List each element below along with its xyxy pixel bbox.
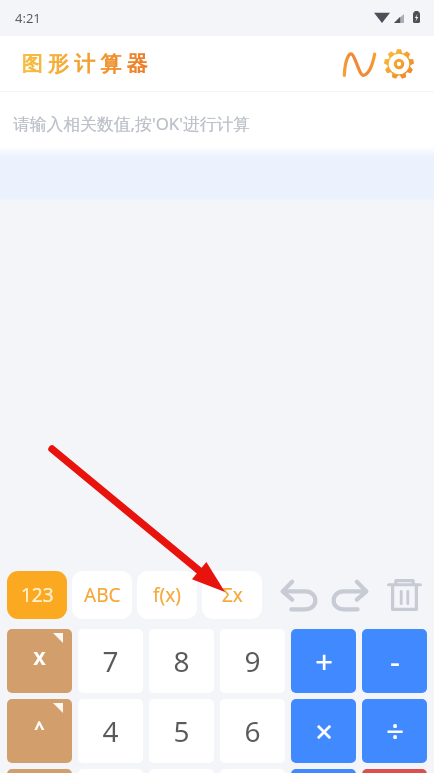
staticText: 5 <box>173 712 190 750</box>
button[interactable]: C <box>362 769 427 773</box>
button[interactable]: 8 <box>149 629 214 693</box>
staticText: 8 <box>173 642 190 680</box>
staticText: X <box>33 646 46 671</box>
button[interactable]: Σx <box>202 571 262 619</box>
staticText: 123 <box>21 582 54 608</box>
button[interactable]: 4 <box>78 699 143 763</box>
button[interactable]: 6 <box>220 699 285 763</box>
staticText: ABC <box>84 582 121 608</box>
staticText: - <box>390 640 400 682</box>
staticText: 4 <box>102 712 119 750</box>
button[interactable]: ^ <box>7 699 72 763</box>
staticText: Σx <box>222 582 243 608</box>
staticText: 请输入相关数值,按'OK'进行计算 <box>13 112 251 135</box>
button[interactable]: Redo <box>331 576 369 614</box>
staticText: 4:21 <box>15 9 41 27</box>
staticText: 图形计算器 <box>19 51 150 77</box>
button[interactable]: f(x) <box>137 571 197 619</box>
button[interactable]: ABC <box>72 571 132 619</box>
button[interactable]: ÷ <box>362 699 427 763</box>
button[interactable]: 5 <box>149 699 214 763</box>
staticText: ^ <box>34 716 45 741</box>
button[interactable]: ( <box>7 769 72 773</box>
staticText: × <box>315 710 333 752</box>
staticText: f(x) <box>153 582 181 608</box>
button[interactable]: Undo <box>280 576 318 614</box>
staticText: 9 <box>244 642 261 680</box>
button[interactable]: X <box>7 629 72 693</box>
button[interactable]: + <box>291 629 356 693</box>
button[interactable]: 9 <box>220 629 285 693</box>
staticText: 7 <box>102 642 119 680</box>
button[interactable]: = <box>291 769 356 773</box>
button[interactable]: Settings <box>381 46 417 82</box>
button[interactable]: Graph <box>341 46 377 82</box>
staticText: + <box>315 640 333 682</box>
staticText: 6 <box>244 712 261 750</box>
button[interactable]: × <box>291 699 356 763</box>
button[interactable]: - <box>362 629 427 693</box>
button[interactable]: 123 <box>7 571 67 619</box>
button[interactable]: Clear all <box>385 576 423 614</box>
staticText: ÷ <box>386 710 404 752</box>
button[interactable]: 7 <box>78 629 143 693</box>
